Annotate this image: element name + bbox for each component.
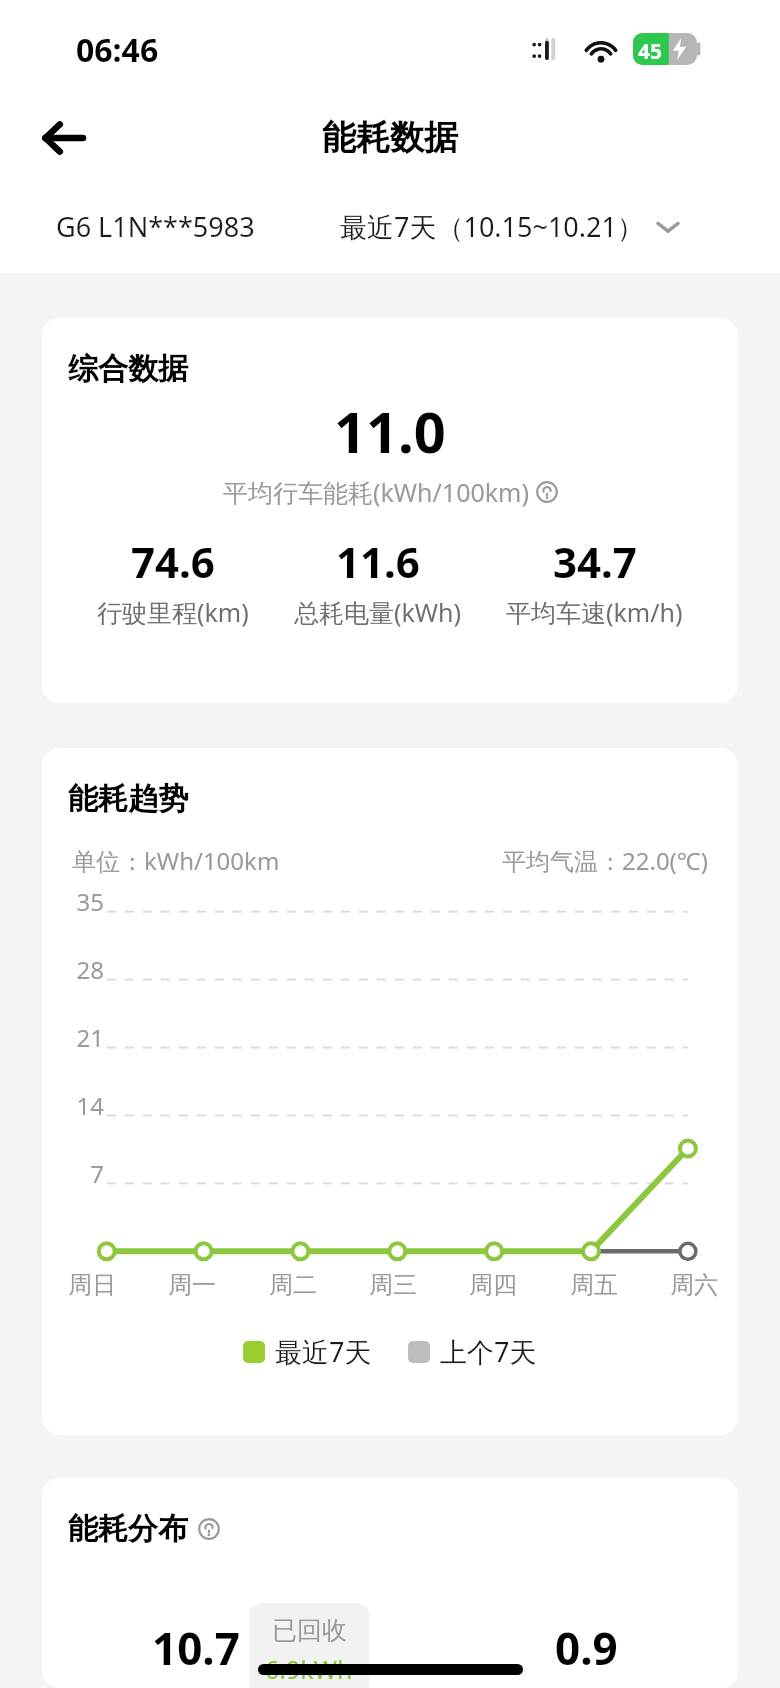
button[interactable]: 上个7天 bbox=[408, 1333, 537, 1370]
staticText: 能耗数据 bbox=[322, 116, 458, 159]
staticText: 平均气温：22.0(℃) bbox=[502, 844, 708, 877]
staticText: 行驶里程(km) bbox=[97, 595, 249, 629]
staticText: 35 bbox=[60, 885, 104, 918]
staticText: 上个7天 bbox=[440, 1333, 537, 1370]
staticText: 10.7 bbox=[152, 1618, 240, 1678]
staticText: 总耗电量(kWh) bbox=[294, 595, 462, 629]
staticText: 34.7 bbox=[553, 533, 637, 590]
staticText: 周日 bbox=[68, 1270, 116, 1300]
staticText: 最近7天（10.15~10.21） bbox=[340, 208, 644, 245]
staticText: 周六 bbox=[670, 1270, 718, 1300]
staticText: 74.6 bbox=[131, 533, 215, 590]
staticText: 平均行车能耗(kWh/100km) bbox=[223, 475, 529, 509]
staticText: 综合数据 bbox=[68, 350, 188, 388]
staticText: 能耗分布 bbox=[68, 1510, 188, 1548]
staticText: 周二 bbox=[269, 1270, 317, 1300]
staticText: 已回收 bbox=[272, 1615, 347, 1646]
button[interactable]: 最近7天 bbox=[243, 1333, 372, 1370]
staticText: 最近7天 bbox=[275, 1333, 372, 1370]
staticText: 21 bbox=[60, 1021, 104, 1054]
button[interactable]: 返回 bbox=[28, 103, 98, 173]
staticText: 11.6 bbox=[336, 533, 420, 590]
staticText: 45 bbox=[638, 37, 663, 66]
staticText: 平均车速(km/h) bbox=[506, 595, 683, 629]
button[interactable]: 最近7天（10.15~10.21） bbox=[340, 208, 680, 245]
staticText: 能耗趋势 bbox=[68, 780, 188, 818]
staticText: 周三 bbox=[369, 1270, 417, 1300]
staticText: 7 bbox=[60, 1157, 104, 1190]
staticText: G6 L1N***5983 bbox=[56, 208, 255, 245]
staticText: 6.9kWh bbox=[265, 1652, 353, 1686]
staticText: 单位：kWh/100km bbox=[72, 844, 280, 877]
staticText: 28 bbox=[60, 953, 104, 986]
staticText: 11.0 bbox=[334, 393, 446, 469]
staticText: 06:46 bbox=[76, 28, 159, 72]
staticText: 周四 bbox=[469, 1270, 517, 1300]
staticText: 周一 bbox=[168, 1270, 216, 1300]
staticText: 14 bbox=[60, 1089, 104, 1122]
staticText: 行程耗电(kWh) bbox=[112, 1684, 280, 1688]
staticText: 0.9 bbox=[555, 1618, 618, 1678]
staticText: 周五 bbox=[570, 1270, 618, 1300]
